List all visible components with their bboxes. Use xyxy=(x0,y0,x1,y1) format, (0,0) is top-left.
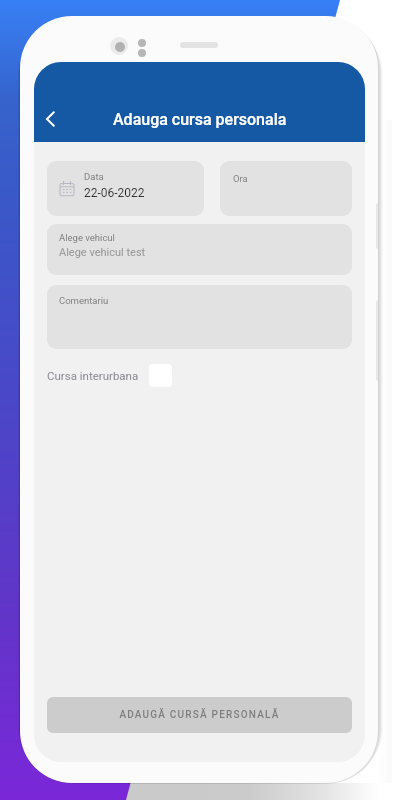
staticText: Data xyxy=(84,171,104,182)
button[interactable]: Data field xyxy=(47,161,204,216)
staticText: ADAUGĂ CURSĂ PERSONALĂ xyxy=(119,709,280,721)
staticText: Comentariu xyxy=(59,295,109,306)
button[interactable]: Back xyxy=(34,97,73,141)
staticText: Cursa interurbana xyxy=(47,369,139,382)
button[interactable]: ADAUGĂ CURSĂ PERSONALĂ xyxy=(47,697,352,733)
button[interactable]: Ora field xyxy=(220,161,352,216)
staticText: Alege vehicul xyxy=(59,232,115,243)
button[interactable]: Alege vehicul xyxy=(47,224,352,275)
staticText: Adauga cursa personala xyxy=(113,110,287,129)
staticText: Alege vehicul test xyxy=(59,246,146,259)
button[interactable]: Comentariu xyxy=(47,285,352,349)
staticText: 22-06-2022 xyxy=(84,186,145,200)
button[interactable]: Cursa interurbana xyxy=(47,362,172,388)
staticText: Ora xyxy=(233,173,248,184)
